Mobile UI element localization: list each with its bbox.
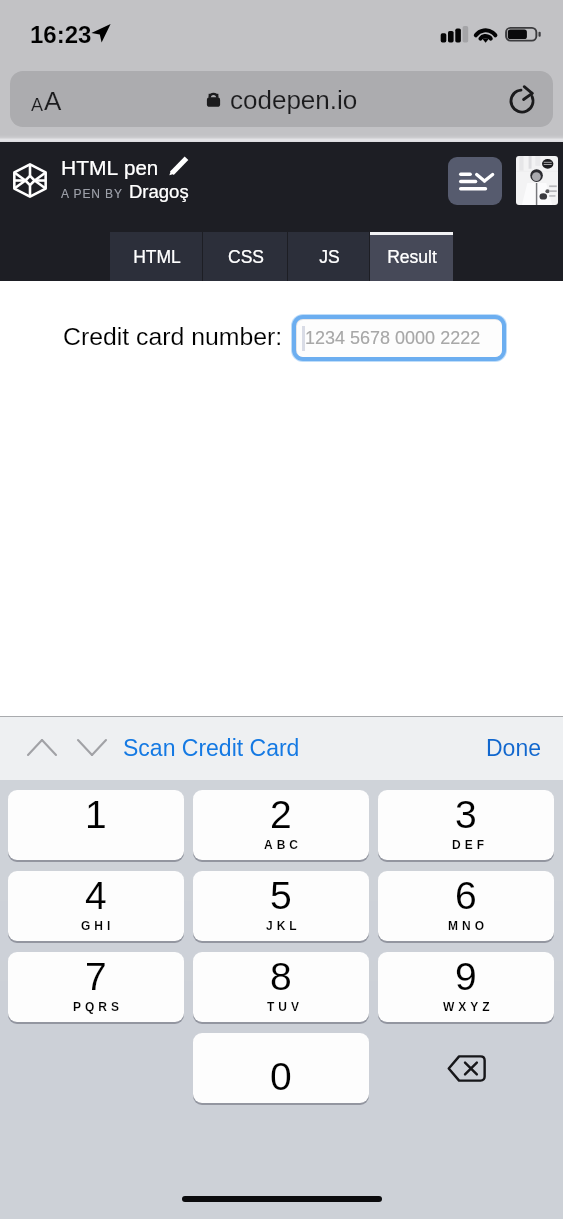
staticText: Result	[387, 247, 437, 267]
staticText: TUV	[265, 1000, 301, 1013]
staticText: PQRS	[73, 1000, 124, 1013]
staticText: ABC	[264, 838, 302, 851]
button[interactable]: 9	[378, 952, 554, 1022]
button[interactable]: 3	[378, 790, 554, 860]
staticText: HTML	[133, 247, 181, 267]
staticText: WXYZ	[443, 1000, 494, 1013]
button[interactable]: Menu	[448, 157, 502, 205]
button[interactable]: CSS	[203, 232, 288, 281]
staticText: 3	[455, 793, 477, 837]
staticText: Dragoş	[129, 181, 189, 202]
staticText: 0	[270, 1055, 292, 1099]
button[interactable]: Profile	[516, 156, 558, 205]
button[interactable]: Previous field	[20, 726, 64, 770]
staticText: 4	[85, 874, 107, 918]
button[interactable]: Next field	[70, 726, 114, 770]
button[interactable]: 6	[378, 871, 554, 941]
staticText: Scan Credit Card	[123, 735, 300, 761]
staticText: 6	[455, 874, 477, 918]
button[interactable]: 5	[193, 871, 369, 941]
staticText: 16:23	[30, 21, 92, 48]
button[interactable]: 2	[193, 790, 369, 860]
button[interactable]: 4	[8, 871, 184, 941]
button[interactable]: Backspace	[378, 1033, 554, 1103]
staticText: HTML	[61, 156, 119, 179]
staticText: pen	[124, 156, 159, 179]
staticText: codepen.io	[230, 85, 358, 114]
button[interactable]: JS	[288, 232, 370, 281]
staticText: JS	[319, 247, 340, 267]
button[interactable]: Done	[486, 735, 541, 761]
staticText: 9	[455, 955, 477, 999]
staticText: JKL	[266, 919, 301, 932]
staticText: 7	[85, 955, 107, 999]
staticText: A	[44, 86, 62, 115]
staticText: DEF	[450, 838, 486, 851]
staticText: 2	[270, 793, 292, 837]
button[interactable]: Reload	[505, 82, 539, 116]
staticText: GHI	[81, 919, 115, 932]
staticText: Credit card number:	[63, 323, 283, 351]
staticText: 1234 5678 0000 2222	[305, 328, 481, 348]
staticText: 8	[270, 955, 292, 999]
button[interactable]: A	[10, 71, 553, 127]
staticText: A PEN BY	[61, 187, 123, 200]
staticText: 5	[270, 874, 292, 918]
staticText: CSS	[228, 247, 264, 267]
button[interactable]: 1234 5678 0000 2222	[297, 320, 502, 357]
button[interactable]: 1	[8, 790, 184, 860]
staticText: 1	[85, 793, 107, 837]
button[interactable]: 0	[193, 1033, 369, 1103]
staticText: MNO	[448, 919, 488, 932]
staticText: Done	[486, 735, 541, 761]
button[interactable]: 8	[193, 952, 369, 1022]
staticText: A	[31, 95, 44, 115]
button[interactable]: 7	[8, 952, 184, 1022]
button[interactable]: Result	[370, 232, 453, 281]
button[interactable]: HTML	[110, 232, 203, 281]
button[interactable]: Scan Credit Card	[123, 735, 300, 761]
